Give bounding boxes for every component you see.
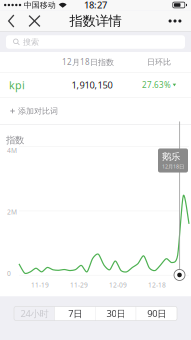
staticText: 18:27 (84, 0, 107, 11)
staticText: 搜索 (23, 37, 39, 47)
button[interactable]: 24小时 (14, 306, 55, 320)
staticText: 24小时 (20, 307, 48, 320)
button[interactable]: 添加对比词 (0, 98, 191, 124)
staticText: 添加对比词 (18, 106, 58, 116)
staticText: 2M (7, 207, 17, 216)
button[interactable]: 7日 (55, 306, 96, 320)
staticText: 4M (7, 146, 17, 155)
staticText: 27.63% (142, 80, 171, 90)
staticText: kpi (9, 78, 25, 92)
staticText: 指数 (6, 134, 24, 146)
staticText: 90日 (147, 307, 166, 320)
button[interactable]: More (164, 13, 186, 29)
button[interactable]: 30日 (95, 306, 136, 320)
staticText: 日环比 (147, 57, 171, 67)
staticText: 12月18日 (162, 163, 184, 170)
button[interactable]: 90日 (136, 306, 177, 320)
staticText: 指数详情 (69, 13, 121, 29)
staticText: 0 (7, 269, 11, 278)
button[interactable]: Close (27, 13, 42, 28)
staticText: 12月18日指数 (62, 57, 114, 67)
staticText: 11-29 (70, 280, 88, 289)
staticText: 7日 (68, 307, 82, 320)
staticText: 11-19 (31, 280, 49, 289)
staticText: 1,910,150 (71, 79, 112, 91)
staticText: 30日 (106, 307, 125, 320)
staticText: 鹅乐 (162, 151, 180, 162)
button[interactable]: Back (5, 13, 18, 28)
button[interactable]: 搜索 (6, 35, 185, 49)
staticText: 中国移动 (24, 0, 56, 10)
staticText: 12-18 (148, 280, 166, 289)
staticText: 12-09 (109, 280, 127, 289)
